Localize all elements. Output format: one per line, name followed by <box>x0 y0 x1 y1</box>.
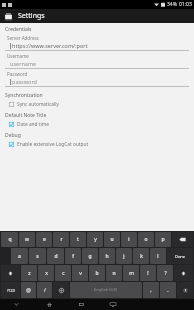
button[interactable]: Done <box>167 248 193 264</box>
button[interactable]: ! <box>140 265 156 281</box>
button[interactable]: x <box>38 265 54 281</box>
button[interactable]: Sync automatically <box>9 100 189 108</box>
staticText: l <box>157 253 159 260</box>
button[interactable]: c <box>55 265 71 281</box>
button[interactable]: / <box>37 282 52 298</box>
staticText: a <box>18 253 21 260</box>
button[interactable]: Home <box>33 299 65 310</box>
button[interactable]: username <box>5 59 189 69</box>
button[interactable]: q <box>1 232 18 247</box>
staticText: Password <box>7 71 28 77</box>
button[interactable]: n <box>106 265 122 281</box>
button[interactable]: Hide keyboard <box>97 299 129 310</box>
button[interactable]: u <box>104 232 120 247</box>
staticText: k <box>140 253 143 260</box>
staticText: e <box>43 236 46 243</box>
staticText: Default Note Title <box>5 112 47 119</box>
button[interactable]: v <box>72 265 88 281</box>
staticText: Synchronization <box>5 92 43 99</box>
button[interactable]: m <box>123 265 139 281</box>
button[interactable]: l <box>150 248 166 264</box>
staticText: p <box>161 236 165 243</box>
staticText: username <box>10 60 37 67</box>
staticText: g <box>88 253 92 260</box>
button[interactable]: Change language <box>53 282 69 298</box>
button[interactable]: d <box>47 248 64 264</box>
staticText: 34% <box>167 1 177 8</box>
staticText: f <box>72 253 74 260</box>
button[interactable]: Shift <box>1 265 20 281</box>
button[interactable]: k <box>133 248 149 264</box>
button[interactable]: w <box>19 232 35 247</box>
button[interactable]: g <box>82 248 98 264</box>
button[interactable]: p <box>155 232 171 247</box>
button[interactable]: b <box>89 265 105 281</box>
staticText: ?123 <box>7 288 15 293</box>
button[interactable]: , <box>143 282 159 298</box>
staticText: password <box>12 78 37 85</box>
staticText: m <box>129 270 134 277</box>
button[interactable]: o <box>138 232 154 247</box>
button[interactable]: . <box>160 282 176 298</box>
staticText: h <box>105 253 109 260</box>
button[interactable]: App icon <box>3 11 14 22</box>
button[interactable]: Shift <box>174 265 193 281</box>
staticText: Sync automatically <box>17 101 59 108</box>
button[interactable]: @ <box>21 282 36 298</box>
staticText: v <box>79 270 82 277</box>
staticText: u <box>110 236 114 243</box>
button[interactable]: t <box>70 232 86 247</box>
button[interactable]: password <box>5 77 189 87</box>
button[interactable]: English (US) <box>70 282 142 298</box>
staticText: s <box>36 253 39 260</box>
staticText: Settings <box>18 11 45 21</box>
staticText: o <box>144 236 148 243</box>
staticText: j <box>123 253 125 260</box>
staticText: Username <box>7 53 29 59</box>
staticText: t <box>77 236 79 243</box>
staticText: i <box>128 236 130 243</box>
staticText: b <box>95 270 99 277</box>
staticText: q <box>8 236 12 243</box>
button[interactable]: z <box>21 265 37 281</box>
button[interactable]: Recent apps <box>65 299 97 310</box>
button[interactable]: ? <box>157 265 173 281</box>
staticText: r <box>60 236 63 243</box>
staticText: Debug <box>5 132 21 139</box>
button[interactable]: i <box>121 232 137 247</box>
staticText: English (US) <box>94 287 118 293</box>
staticText: @ <box>26 287 31 294</box>
button[interactable]: s <box>29 248 46 264</box>
button[interactable]: h <box>99 248 115 264</box>
staticText: Credentials <box>5 26 32 33</box>
staticText: c <box>62 270 65 277</box>
button[interactable]: f <box>65 248 81 264</box>
staticText: n <box>112 270 116 277</box>
staticText: . <box>167 287 169 294</box>
staticText: Date and time <box>17 121 49 128</box>
staticText: ? <box>164 270 167 277</box>
staticText: , <box>150 287 152 294</box>
button[interactable]: Back <box>0 299 33 310</box>
staticText: 01:03 <box>179 1 192 8</box>
button[interactable]: r <box>53 232 69 247</box>
button[interactable]: j <box>116 248 132 264</box>
button[interactable]: Voice input <box>177 282 193 298</box>
button[interactable]: Backspace <box>172 232 193 247</box>
button[interactable]: e <box>36 232 52 247</box>
staticText: Enable extensive LogCat output <box>17 141 89 148</box>
staticText: w <box>25 236 29 243</box>
button[interactable]: https://www.server.com/:port <box>5 41 189 51</box>
staticText: y <box>94 236 97 243</box>
button[interactable]: Enable extensive LogCat output <box>9 140 189 148</box>
button[interactable]: ?123 <box>1 282 20 298</box>
staticText: Server Address <box>7 35 39 41</box>
button[interactable]: Date and time <box>9 120 189 128</box>
staticText: ! <box>147 270 149 277</box>
staticText: Done <box>175 254 186 259</box>
staticText: x <box>45 270 48 277</box>
button[interactable]: y <box>87 232 103 247</box>
staticText: / <box>44 287 46 294</box>
button[interactable]: a <box>11 248 28 264</box>
staticText: z <box>28 270 31 277</box>
